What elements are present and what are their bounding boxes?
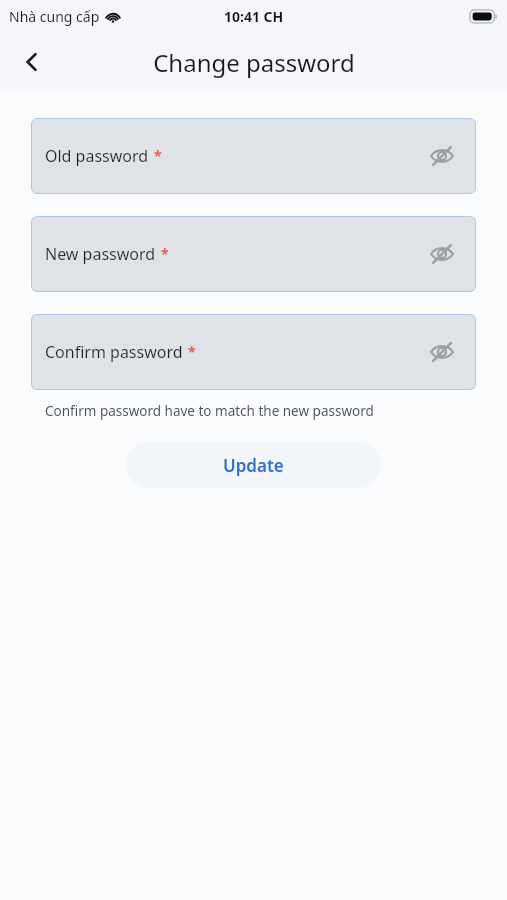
staticText: Confirm password (45, 341, 183, 363)
staticText: Update (223, 454, 284, 477)
button[interactable]: Update (126, 442, 381, 488)
button[interactable]: Confirm password (31, 314, 476, 390)
button[interactable]: Show password (422, 332, 462, 372)
staticText: Nhà cung cấp (9, 7, 100, 26)
staticText: New password (45, 243, 156, 265)
button[interactable]: New password (31, 216, 476, 292)
button[interactable]: Old password (31, 118, 476, 194)
staticText: 10:41 CH (224, 7, 284, 26)
button[interactable]: Show password (422, 136, 462, 176)
staticText: * (154, 146, 162, 165)
button[interactable]: Show password (422, 234, 462, 274)
staticText: Change password (153, 46, 355, 79)
staticText: * (161, 244, 169, 263)
staticText: * (188, 342, 196, 361)
button[interactable]: Back (10, 40, 54, 84)
staticText: Old password (45, 145, 149, 167)
staticText: Confirm password have to match the new p… (45, 402, 374, 420)
